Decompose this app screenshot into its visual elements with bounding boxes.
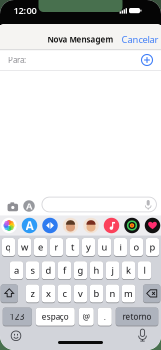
staticText: l [143,264,145,276]
button[interactable]: Shortcuts [42,218,58,233]
button[interactable]: espaço [36,308,75,326]
button[interactable]: j [106,261,119,280]
staticText: Nova Mensagem [47,34,113,45]
button[interactable]: Music [104,218,119,233]
button[interactable]: . [98,308,112,326]
button[interactable]: Camera [7,200,19,212]
button[interactable]: Digital Touch [145,218,160,233]
button[interactable]: k [122,261,135,280]
staticText: A [26,200,32,212]
button[interactable]: v [74,284,87,303]
button[interactable]: Delete [143,284,160,303]
staticText: h [93,264,99,276]
button[interactable]: z [26,284,39,303]
staticText: v [78,287,83,300]
staticText: b [93,287,99,300]
button[interactable]: g [74,261,87,280]
staticText: e [38,241,43,253]
button[interactable]: p [146,238,159,257]
staticText: q [5,241,11,253]
staticText: retorno [122,311,151,322]
staticText: o [133,241,139,253]
button[interactable]: u [98,238,111,257]
staticText: c [62,287,66,300]
button[interactable]: a [10,261,23,280]
staticText: n [109,287,115,300]
button[interactable]: f [58,261,71,280]
button[interactable]: q [2,238,15,257]
staticText: A [25,217,33,233]
staticText: a [14,264,19,276]
button[interactable]: y [82,238,95,257]
button[interactable]: i [114,238,127,257]
button[interactable]: e [34,238,47,257]
staticText: w [21,241,28,253]
button[interactable]: h [90,261,103,280]
staticText: i [119,241,121,253]
button[interactable]: c [58,284,71,303]
button[interactable]: @ [79,308,94,326]
staticText: m [124,287,133,300]
staticText: espaço [42,311,69,322]
staticText: j [111,264,113,276]
button[interactable]: t [66,238,79,257]
button[interactable]: r [50,238,63,257]
staticText: z [30,287,34,300]
button[interactable]: Memoji Stickers [63,218,78,233]
staticText: p [149,241,155,253]
staticText: y [86,241,91,253]
staticText: r [54,241,58,253]
button[interactable]: w [18,238,31,257]
button[interactable]: Message field [42,197,156,212]
staticText: d [45,264,51,276]
button[interactable]: s [26,261,39,280]
button[interactable]: 123 [3,308,32,326]
button[interactable]: Emoji [10,330,22,342]
button[interactable]: Apps [23,200,35,212]
button[interactable]: b [90,284,103,303]
button[interactable]: Dictation [136,328,149,342]
staticText: s [30,264,34,276]
button[interactable]: Activity [124,218,140,233]
staticText: 123 [10,311,25,322]
button[interactable]: d [42,261,55,280]
button[interactable]: l [138,261,151,280]
staticText: u [101,241,107,253]
staticText: 12:00 [13,4,36,17]
staticText: t [71,241,74,253]
staticText: f [63,264,66,276]
button[interactable]: x [42,284,55,303]
staticText: k [126,264,131,276]
staticText: @ [83,311,90,322]
button[interactable]: App Store [22,218,37,233]
button[interactable]: o [130,238,143,257]
staticText: g [77,264,83,276]
button[interactable]: Cancelar [121,33,158,46]
button[interactable]: Shift [1,284,18,303]
button[interactable]: Animoji [83,218,99,233]
button[interactable]: n [106,284,119,303]
staticText: Para: [8,55,26,65]
button[interactable]: Photos [1,218,17,233]
staticText: Cancelar [121,33,158,46]
button[interactable]: Add Contact [140,53,153,66]
button[interactable]: To [0,50,161,70]
staticText: . [104,311,106,322]
button[interactable]: retorno [116,308,158,326]
staticText: x [46,287,51,300]
button[interactable]: m [122,284,135,303]
